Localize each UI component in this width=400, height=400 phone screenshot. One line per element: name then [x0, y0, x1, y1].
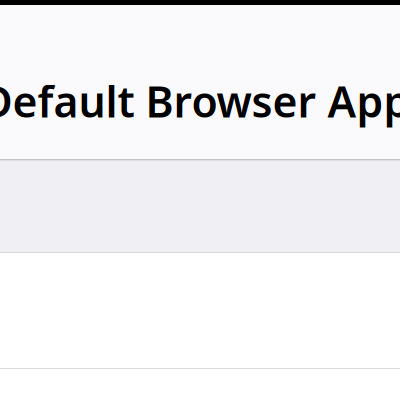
staticText: Default Browser App	[0, 73, 400, 129]
